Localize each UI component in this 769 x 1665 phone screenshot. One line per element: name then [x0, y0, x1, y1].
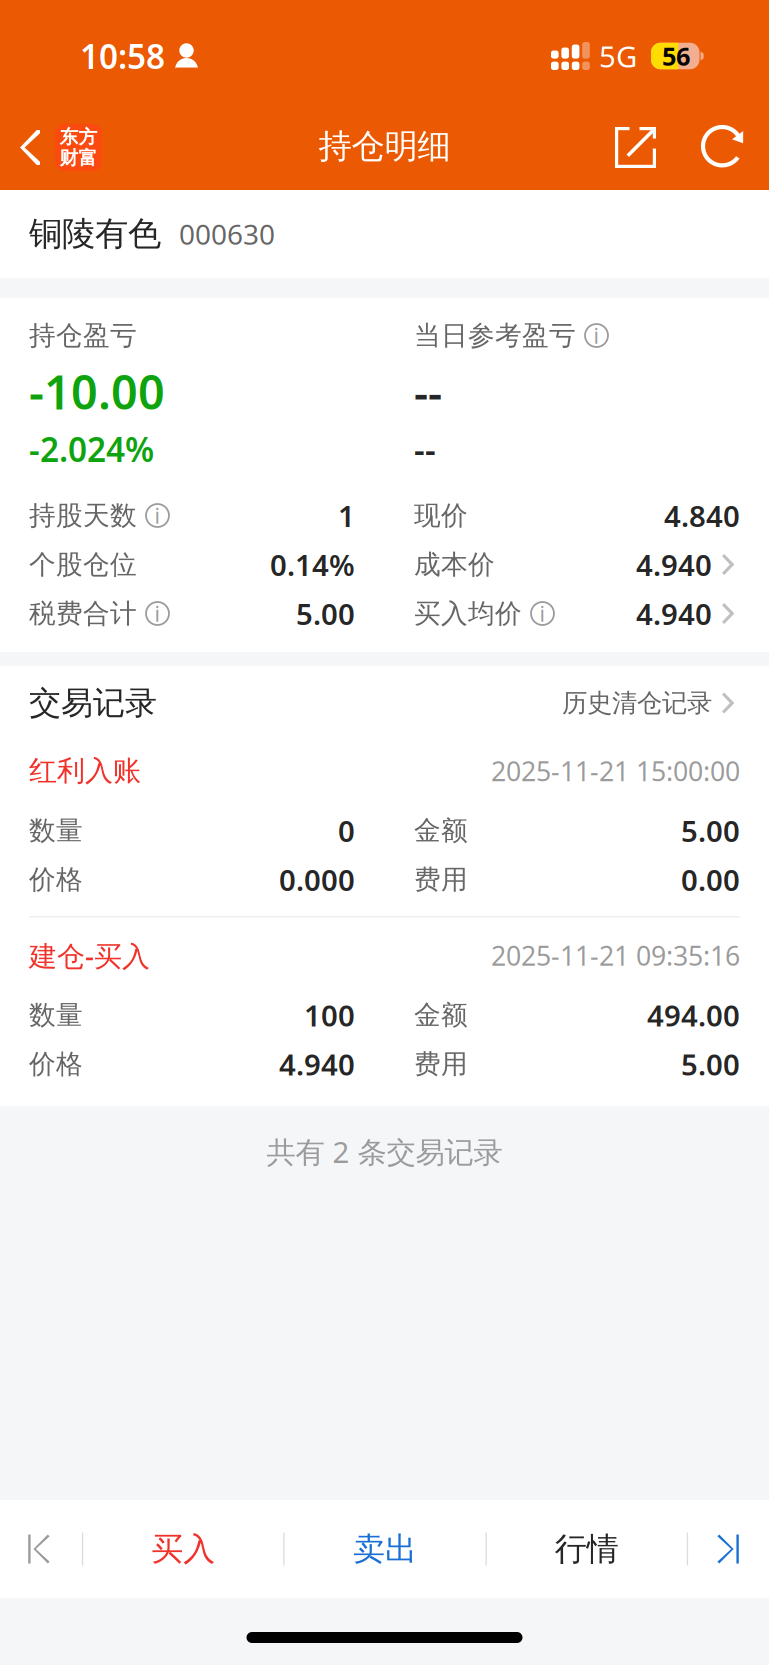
- button[interactable]: Share: [585, 100, 685, 190]
- staticText: 5.00: [296, 594, 355, 633]
- staticText: -2.024%: [29, 427, 154, 471]
- staticText: 方: [78, 125, 97, 148]
- staticText: 红利入账: [29, 754, 141, 788]
- button[interactable]: 历史清仓记录: [562, 666, 740, 740]
- staticText: 0.00: [681, 860, 740, 899]
- button[interactable]: Last: [688, 1500, 768, 1598]
- staticText: 东: [59, 125, 78, 148]
- staticText: --: [414, 362, 442, 421]
- staticText: 建仓-买入: [29, 937, 150, 974]
- button[interactable]: 买入: [83, 1500, 283, 1598]
- staticText: 4.940: [279, 1044, 355, 1083]
- staticText: 交易记录: [29, 683, 157, 723]
- staticText: 共有 2 条交易记录: [266, 1132, 502, 1171]
- button[interactable]: First: [1, 1500, 82, 1598]
- staticText: 5.00: [681, 1044, 740, 1083]
- staticText: 价格: [29, 1048, 83, 1080]
- staticText: 数量: [29, 814, 83, 847]
- staticText: 当日参考盈亏: [414, 319, 576, 352]
- staticText: 持股天数: [29, 499, 137, 532]
- staticText: 4.940: [636, 594, 712, 633]
- staticText: 费用: [414, 1048, 468, 1080]
- button[interactable]: 买入均价: [414, 589, 740, 638]
- staticText: 持仓盈亏: [29, 319, 137, 352]
- button[interactable]: Refresh: [685, 100, 769, 190]
- staticText: 金额: [414, 999, 468, 1031]
- staticText: --: [414, 427, 436, 471]
- staticText: 494.00: [647, 995, 740, 1034]
- button[interactable]: 行情: [487, 1500, 687, 1598]
- staticText: 2025-11-21 09:35:16: [491, 938, 740, 973]
- staticText: 铜陵有色: [29, 213, 161, 254]
- staticText: 数量: [29, 999, 83, 1031]
- staticText: i: [154, 599, 160, 628]
- staticText: 持仓明细: [318, 126, 450, 167]
- staticText: 0.000: [279, 860, 355, 899]
- staticText: 56: [662, 39, 690, 73]
- staticText: 4.840: [664, 496, 740, 535]
- staticText: 买入: [151, 1529, 215, 1569]
- staticText: 富: [78, 146, 97, 169]
- staticText: 成本价: [414, 548, 495, 581]
- staticText: 现价: [414, 499, 468, 532]
- staticText: 5.00: [681, 811, 740, 850]
- staticText: 000630: [179, 215, 275, 253]
- staticText: 费用: [414, 863, 468, 896]
- staticText: 2025-11-21 15:00:00: [491, 753, 740, 789]
- staticText: 1: [338, 496, 355, 535]
- staticText: 4.940: [636, 545, 712, 584]
- staticText: 价格: [29, 863, 83, 896]
- staticText: i: [154, 501, 160, 530]
- staticText: i: [593, 321, 599, 350]
- button[interactable]: 成本价: [414, 540, 740, 589]
- staticText: -10.00: [29, 360, 165, 422]
- staticText: 历史清仓记录: [562, 687, 712, 718]
- staticText: 5G: [599, 36, 637, 75]
- button[interactable]: Back: [0, 100, 116, 190]
- staticText: 税费合计: [29, 597, 137, 630]
- staticText: i: [539, 599, 545, 628]
- staticText: 卖出: [353, 1529, 417, 1569]
- staticText: 金额: [414, 814, 468, 847]
- staticText: 0: [338, 811, 355, 850]
- staticText: 10:58: [80, 34, 165, 78]
- staticText: 0.14%: [270, 545, 355, 584]
- staticText: 行情: [555, 1529, 619, 1569]
- staticText: 100: [304, 995, 355, 1034]
- staticText: 个股仓位: [29, 548, 137, 581]
- staticText: 买入均价: [414, 597, 522, 630]
- button[interactable]: 卖出: [284, 1500, 485, 1598]
- staticText: 财: [59, 146, 78, 169]
